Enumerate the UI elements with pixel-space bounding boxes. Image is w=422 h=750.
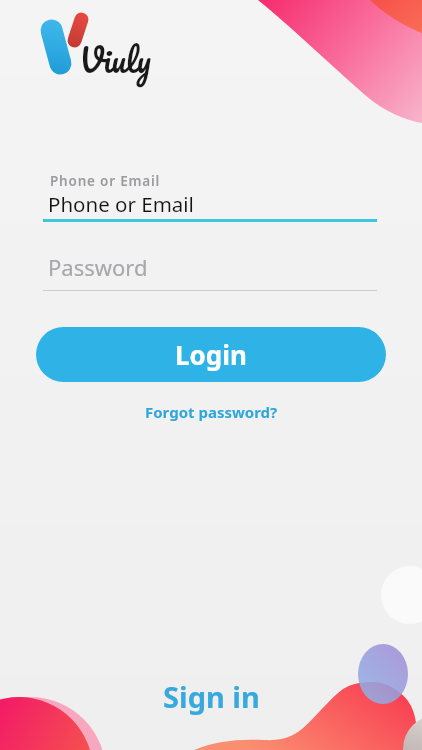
staticText: Phone or Email [48,190,194,218]
staticText: Phone or Email [50,172,161,190]
button[interactable]: Phone or Email [43,172,377,222]
button[interactable]: Sign in [163,677,260,716]
staticText: Forgot password? [145,402,278,422]
button[interactable]: Password [43,245,377,291]
staticText: Viuly [79,31,151,87]
staticText: Password [48,252,148,282]
button[interactable]: Login [36,327,386,382]
button[interactable]: Forgot password? [145,402,278,422]
staticText: Login [175,337,247,372]
staticText: Sign in [163,677,260,716]
